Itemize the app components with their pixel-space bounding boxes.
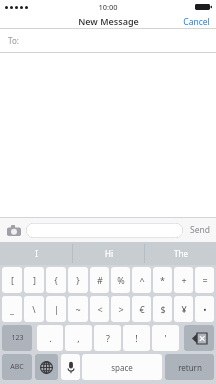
staticText: Cancel xyxy=(183,16,210,26)
button[interactable]: Hi xyxy=(73,242,144,265)
staticText: 123 xyxy=(11,333,24,343)
button[interactable]: Cancel xyxy=(177,14,216,28)
staticText: [ xyxy=(11,274,14,286)
staticText: space xyxy=(111,362,133,373)
button[interactable]: ? xyxy=(94,325,121,351)
button[interactable]: $ xyxy=(153,296,172,322)
staticText: ? xyxy=(106,332,110,344)
button[interactable]: Next keyboard xyxy=(35,354,58,380)
button[interactable]: ABC xyxy=(2,354,32,380)
button[interactable]: € xyxy=(132,296,151,322)
button[interactable]: space xyxy=(82,354,162,380)
staticText: * xyxy=(160,274,165,286)
button[interactable]: # xyxy=(90,267,109,293)
staticText: To: xyxy=(8,35,19,46)
button[interactable]: • xyxy=(195,296,214,322)
staticText: ~ xyxy=(75,303,81,315)
staticText: _ xyxy=(10,303,14,315)
button[interactable]: * xyxy=(153,267,172,293)
staticText: I xyxy=(35,248,38,259)
button[interactable]: + xyxy=(174,267,193,293)
staticText: ] xyxy=(33,274,36,286)
staticText: < xyxy=(97,303,103,315)
staticText: Send xyxy=(190,224,210,236)
staticText: \ xyxy=(32,303,36,315)
staticText: ABC xyxy=(10,362,24,372)
staticText: % xyxy=(117,274,125,286)
staticText: 10:00 xyxy=(98,2,118,12)
button[interactable]: [ xyxy=(2,267,22,293)
button[interactable]: < xyxy=(90,296,109,322)
button[interactable]: { xyxy=(46,267,66,293)
staticText: > xyxy=(118,303,124,315)
button[interactable]: ! xyxy=(123,325,150,351)
button[interactable]: return xyxy=(165,354,214,380)
button[interactable]: ' xyxy=(152,325,179,351)
button[interactable]: } xyxy=(68,267,88,293)
button[interactable]: 123 xyxy=(2,325,32,351)
button[interactable]: % xyxy=(111,267,130,293)
staticText: ' xyxy=(164,332,167,344)
button[interactable]: ~ xyxy=(68,296,88,322)
button[interactable]: > xyxy=(111,296,130,322)
button[interactable]: Camera xyxy=(5,222,23,238)
staticText: + xyxy=(181,274,187,286)
button[interactable]: ^ xyxy=(132,267,151,293)
button[interactable]: , xyxy=(65,325,92,351)
staticText: return xyxy=(178,362,202,373)
staticText: ¥ xyxy=(181,303,187,315)
staticText: € xyxy=(139,303,145,315)
staticText: } xyxy=(76,274,80,286)
button[interactable] xyxy=(26,223,183,238)
button[interactable]: _ xyxy=(2,296,22,322)
staticText: # xyxy=(97,274,103,286)
staticText: . xyxy=(49,332,52,344)
staticText: • xyxy=(203,303,207,315)
staticText: , xyxy=(77,332,80,344)
staticText: = xyxy=(202,274,208,286)
button[interactable]: ¥ xyxy=(174,296,193,322)
staticText: New Message xyxy=(78,15,139,27)
button[interactable]: Dictate xyxy=(61,354,80,380)
button[interactable]: The xyxy=(145,242,216,265)
button[interactable]: I xyxy=(0,242,72,265)
staticText: Hi xyxy=(105,248,113,259)
staticText: ! xyxy=(135,332,138,344)
button[interactable]: To: xyxy=(0,29,216,52)
staticText: | xyxy=(54,303,59,315)
button[interactable]: ] xyxy=(24,267,44,293)
button[interactable]: = xyxy=(195,267,214,293)
staticText: { xyxy=(54,274,58,286)
button[interactable]: Send xyxy=(187,222,213,238)
staticText: ^ xyxy=(139,274,145,286)
button[interactable]: . xyxy=(37,325,63,351)
button[interactable]: Delete xyxy=(184,325,214,351)
staticText: $ xyxy=(160,303,166,315)
staticText: The xyxy=(174,248,188,259)
button[interactable]: \ xyxy=(24,296,44,322)
button[interactable]: | xyxy=(46,296,66,322)
